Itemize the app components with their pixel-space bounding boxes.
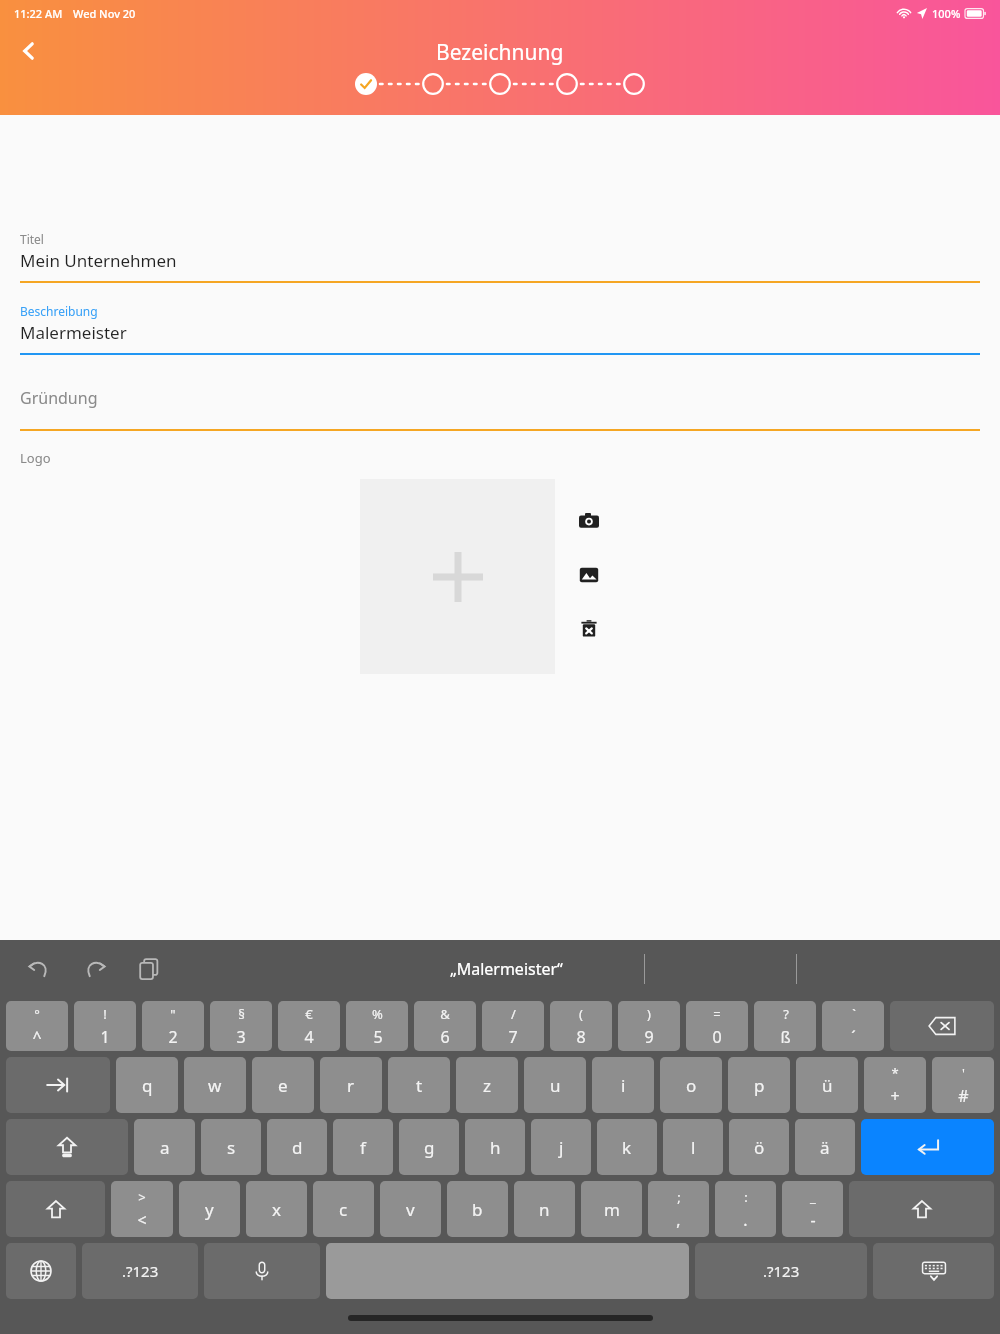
button[interactable]: l bbox=[663, 1119, 723, 1175]
button[interactable]: = bbox=[686, 1001, 748, 1051]
button[interactable]: Step 2 bbox=[422, 73, 444, 95]
button[interactable]: § bbox=[210, 1001, 272, 1051]
button[interactable]: Hide keyboard bbox=[873, 1243, 994, 1299]
button[interactable]: _ bbox=[782, 1181, 843, 1237]
button[interactable]: : bbox=[715, 1181, 776, 1237]
button[interactable]: * bbox=[864, 1057, 926, 1113]
button[interactable]: Gründung bbox=[20, 373, 980, 431]
button[interactable]: g bbox=[399, 1119, 459, 1175]
staticText: ; bbox=[677, 1188, 681, 1206]
button[interactable]: Step 3 bbox=[489, 73, 511, 95]
button[interactable]: ü bbox=[796, 1057, 858, 1113]
staticText: m bbox=[604, 1198, 620, 1221]
button[interactable]: Shift bbox=[849, 1181, 994, 1237]
button[interactable]: Enter bbox=[861, 1119, 994, 1175]
staticText: h bbox=[490, 1136, 501, 1159]
button[interactable]: .?123 bbox=[82, 1243, 198, 1299]
button[interactable]: Voice input bbox=[204, 1243, 320, 1299]
button[interactable]: Shift bbox=[6, 1181, 105, 1237]
button[interactable]: Caps lock bbox=[6, 1119, 128, 1175]
button[interactable]: > bbox=[111, 1181, 173, 1237]
button[interactable]: Step 5 bbox=[623, 73, 645, 95]
button[interactable]: u bbox=[524, 1057, 586, 1113]
button[interactable]: z bbox=[456, 1057, 518, 1113]
button[interactable]: Paste bbox=[132, 952, 166, 986]
button[interactable]: % bbox=[346, 1001, 408, 1051]
button[interactable]: d bbox=[267, 1119, 327, 1175]
button[interactable]: n bbox=[514, 1181, 575, 1237]
button[interactable]: Back bbox=[8, 30, 50, 72]
staticText: i bbox=[621, 1074, 626, 1097]
staticText: ß bbox=[780, 1026, 791, 1048]
button[interactable]: Add logo bbox=[360, 479, 555, 674]
button[interactable]: x bbox=[246, 1181, 307, 1237]
button[interactable]: b bbox=[447, 1181, 508, 1237]
button[interactable]: Redo bbox=[78, 952, 112, 986]
button[interactable]: e bbox=[252, 1057, 314, 1113]
button[interactable]: v bbox=[380, 1181, 441, 1237]
button[interactable]: „Malermeister“ bbox=[369, 940, 644, 998]
button[interactable]: q bbox=[116, 1057, 178, 1113]
staticText: f bbox=[360, 1136, 366, 1159]
button[interactable]: a bbox=[134, 1119, 195, 1175]
button[interactable]: ) bbox=[618, 1001, 680, 1051]
button[interactable]: ! bbox=[74, 1001, 136, 1051]
button[interactable]: Delete image bbox=[577, 617, 601, 641]
button[interactable]: .?123 bbox=[695, 1243, 867, 1299]
button[interactable]: f bbox=[333, 1119, 393, 1175]
button[interactable]: ° bbox=[6, 1001, 68, 1051]
button[interactable]: Change language bbox=[6, 1243, 76, 1299]
button[interactable]: Undo bbox=[22, 952, 56, 986]
button[interactable]: j bbox=[531, 1119, 591, 1175]
staticText: 100% bbox=[932, 6, 961, 21]
staticText: ^ bbox=[32, 1026, 42, 1048]
staticText: " bbox=[170, 1005, 176, 1023]
staticText: 2 bbox=[168, 1026, 178, 1048]
staticText: e bbox=[278, 1074, 288, 1097]
button[interactable]: ( bbox=[550, 1001, 612, 1051]
button[interactable]: m bbox=[581, 1181, 642, 1237]
button[interactable]: ` bbox=[822, 1001, 884, 1051]
staticText: Titel bbox=[20, 231, 44, 247]
button[interactable]: / bbox=[482, 1001, 544, 1051]
button[interactable]: c bbox=[313, 1181, 374, 1237]
staticText: ` bbox=[852, 1005, 856, 1023]
button[interactable]: p bbox=[728, 1057, 790, 1113]
button[interactable]: r bbox=[320, 1057, 382, 1113]
staticText: 6 bbox=[440, 1026, 450, 1048]
button[interactable]: ö bbox=[729, 1119, 789, 1175]
button[interactable]: ; bbox=[648, 1181, 709, 1237]
staticText: 3 bbox=[236, 1026, 246, 1048]
button[interactable]: ' bbox=[932, 1057, 994, 1113]
staticText: % bbox=[372, 1005, 383, 1023]
button[interactable]: Backspace bbox=[890, 1001, 994, 1051]
button[interactable]: " bbox=[142, 1001, 204, 1051]
button[interactable]: Beschreibung bbox=[20, 303, 980, 355]
staticText: / bbox=[511, 1005, 516, 1023]
button[interactable]: y bbox=[179, 1181, 240, 1237]
button[interactable]: ? bbox=[754, 1001, 816, 1051]
button[interactable]: t bbox=[388, 1057, 450, 1113]
button[interactable]: ä bbox=[795, 1119, 855, 1175]
button[interactable]: s bbox=[201, 1119, 261, 1175]
button[interactable]: Step 4 bbox=[556, 73, 578, 95]
button[interactable]: i bbox=[592, 1057, 654, 1113]
staticText: j bbox=[559, 1136, 564, 1159]
button[interactable]: € bbox=[278, 1001, 340, 1051]
button[interactable]: Step 1 completed bbox=[355, 73, 377, 95]
button[interactable]: Take photo bbox=[577, 509, 601, 533]
staticText: ? bbox=[783, 1005, 789, 1023]
button[interactable]: w bbox=[184, 1057, 246, 1113]
staticText: .?123 bbox=[763, 1261, 800, 1281]
button[interactable]: o bbox=[660, 1057, 722, 1113]
button[interactable]: h bbox=[465, 1119, 525, 1175]
button[interactable]: k bbox=[597, 1119, 657, 1175]
button[interactable]: Titel bbox=[20, 231, 980, 283]
button[interactable]: & bbox=[414, 1001, 476, 1051]
button[interactable]: Choose image bbox=[577, 563, 601, 587]
staticText: § bbox=[238, 1005, 245, 1023]
button[interactable]: Tab bbox=[6, 1057, 110, 1113]
